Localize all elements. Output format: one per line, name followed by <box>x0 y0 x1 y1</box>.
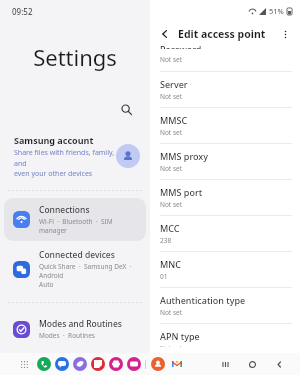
staticText: Password <box>160 43 202 49</box>
button[interactable]: Camera <box>127 357 141 371</box>
button[interactable]: MNC <box>150 252 300 287</box>
button[interactable]: Connections <box>4 198 146 241</box>
staticText: Not set <box>160 164 183 173</box>
button[interactable]: MCC <box>150 216 300 251</box>
button[interactable]: MMS port <box>150 180 300 215</box>
button[interactable]: Phone <box>37 357 51 371</box>
button[interactable]: More options <box>276 25 294 43</box>
button[interactable]: Home <box>246 358 259 371</box>
staticText: Samsung account <box>14 134 94 146</box>
button[interactable]: APN type <box>150 324 300 353</box>
staticText: Not set <box>160 55 183 64</box>
staticText: Server <box>160 78 188 90</box>
staticText: Modes and Routines <box>39 318 122 330</box>
button[interactable]: Gallery <box>109 357 123 371</box>
staticText: Connected devices <box>39 249 115 261</box>
staticText: MCC <box>160 222 180 234</box>
button[interactable]: Back <box>156 25 174 43</box>
button[interactable]: Apps <box>18 358 30 370</box>
staticText: MMSC <box>160 114 188 126</box>
button[interactable]: Server <box>150 72 300 107</box>
button[interactable]: Search settings <box>0 96 150 122</box>
staticText: Not set <box>160 344 183 347</box>
staticText: Not set <box>160 128 183 137</box>
button[interactable]: Messages <box>55 357 69 371</box>
staticText: MMS port <box>160 186 203 198</box>
button[interactable]: Connected devices <box>4 243 146 295</box>
button[interactable]: Samsung account <box>0 128 150 184</box>
button[interactable]: Internet <box>73 357 87 371</box>
staticText: MMS proxy <box>160 150 208 162</box>
button[interactable]: Password <box>150 46 300 71</box>
button[interactable]: MMSC <box>150 108 300 143</box>
staticText: 51% <box>269 6 284 16</box>
staticText: Not set <box>160 92 183 101</box>
staticText: 09:52 <box>12 6 33 17</box>
staticText: Wi-Fi · Bluetooth · SIM manager <box>39 217 140 235</box>
staticText: APN type <box>160 330 200 342</box>
staticText: Connections <box>39 204 90 216</box>
button[interactable]: Modes and Routines <box>4 312 146 346</box>
staticText: Share files with friends, family, and ev… <box>14 148 116 178</box>
staticText: Edit access point <box>178 27 266 41</box>
button[interactable]: MMS proxy <box>150 144 300 179</box>
button[interactable]: Back <box>273 358 286 371</box>
button[interactable]: Recents <box>219 358 232 371</box>
button[interactable]: Contacts <box>151 357 165 371</box>
staticText: Authentication type <box>160 294 246 306</box>
button[interactable]: Authentication type <box>150 288 300 323</box>
staticText: MNC <box>160 258 181 270</box>
button[interactable]: Notes <box>91 357 105 371</box>
staticText: Quick Share · Samsung DeX · Android Auto <box>39 262 140 289</box>
button[interactable]: Gmail <box>170 357 184 371</box>
staticText: 238 <box>160 236 172 245</box>
staticText: Not set <box>160 200 183 209</box>
staticText: Not set <box>160 308 183 317</box>
staticText: 01 <box>160 272 168 281</box>
staticText: Settings <box>0 42 150 72</box>
staticText: Modes · Routines <box>39 331 95 340</box>
